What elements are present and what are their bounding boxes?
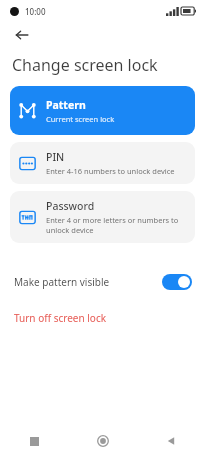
button[interactable]: Back (9, 22, 35, 48)
button[interactable]: Make pattern visible (0, 265, 205, 299)
button[interactable]: PIN (10, 142, 195, 184)
staticText: Make pattern visible (14, 275, 110, 289)
staticText: 10:00 (25, 6, 46, 17)
staticText: Current screen lock (46, 114, 115, 124)
staticText: PIN (46, 150, 65, 164)
staticText: Enter 4-16 numbers to unlock device (46, 166, 175, 176)
button[interactable]: Back (137, 426, 205, 456)
staticText: Enter 4 or more letters or numbers to un… (46, 215, 183, 235)
button[interactable]: Pattern (10, 86, 195, 135)
button[interactable]: Password (10, 191, 195, 243)
button[interactable]: Turn off screen lock (0, 309, 205, 329)
staticText: Pattern (46, 98, 86, 112)
button[interactable]: Home (69, 426, 137, 456)
staticText: Turn off screen lock (14, 311, 107, 325)
staticText: Change screen lock (12, 54, 158, 76)
button[interactable]: Recents (0, 426, 69, 456)
staticText: Password (46, 199, 95, 213)
